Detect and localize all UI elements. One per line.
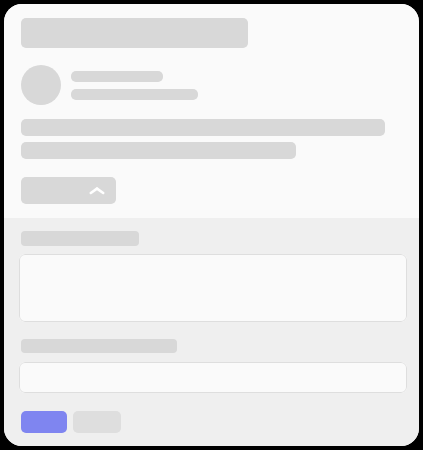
button[interactable]: Collapse [21,177,116,204]
button[interactable]: Submit [21,411,67,433]
button[interactable] [19,254,407,322]
button[interactable] [19,362,407,393]
